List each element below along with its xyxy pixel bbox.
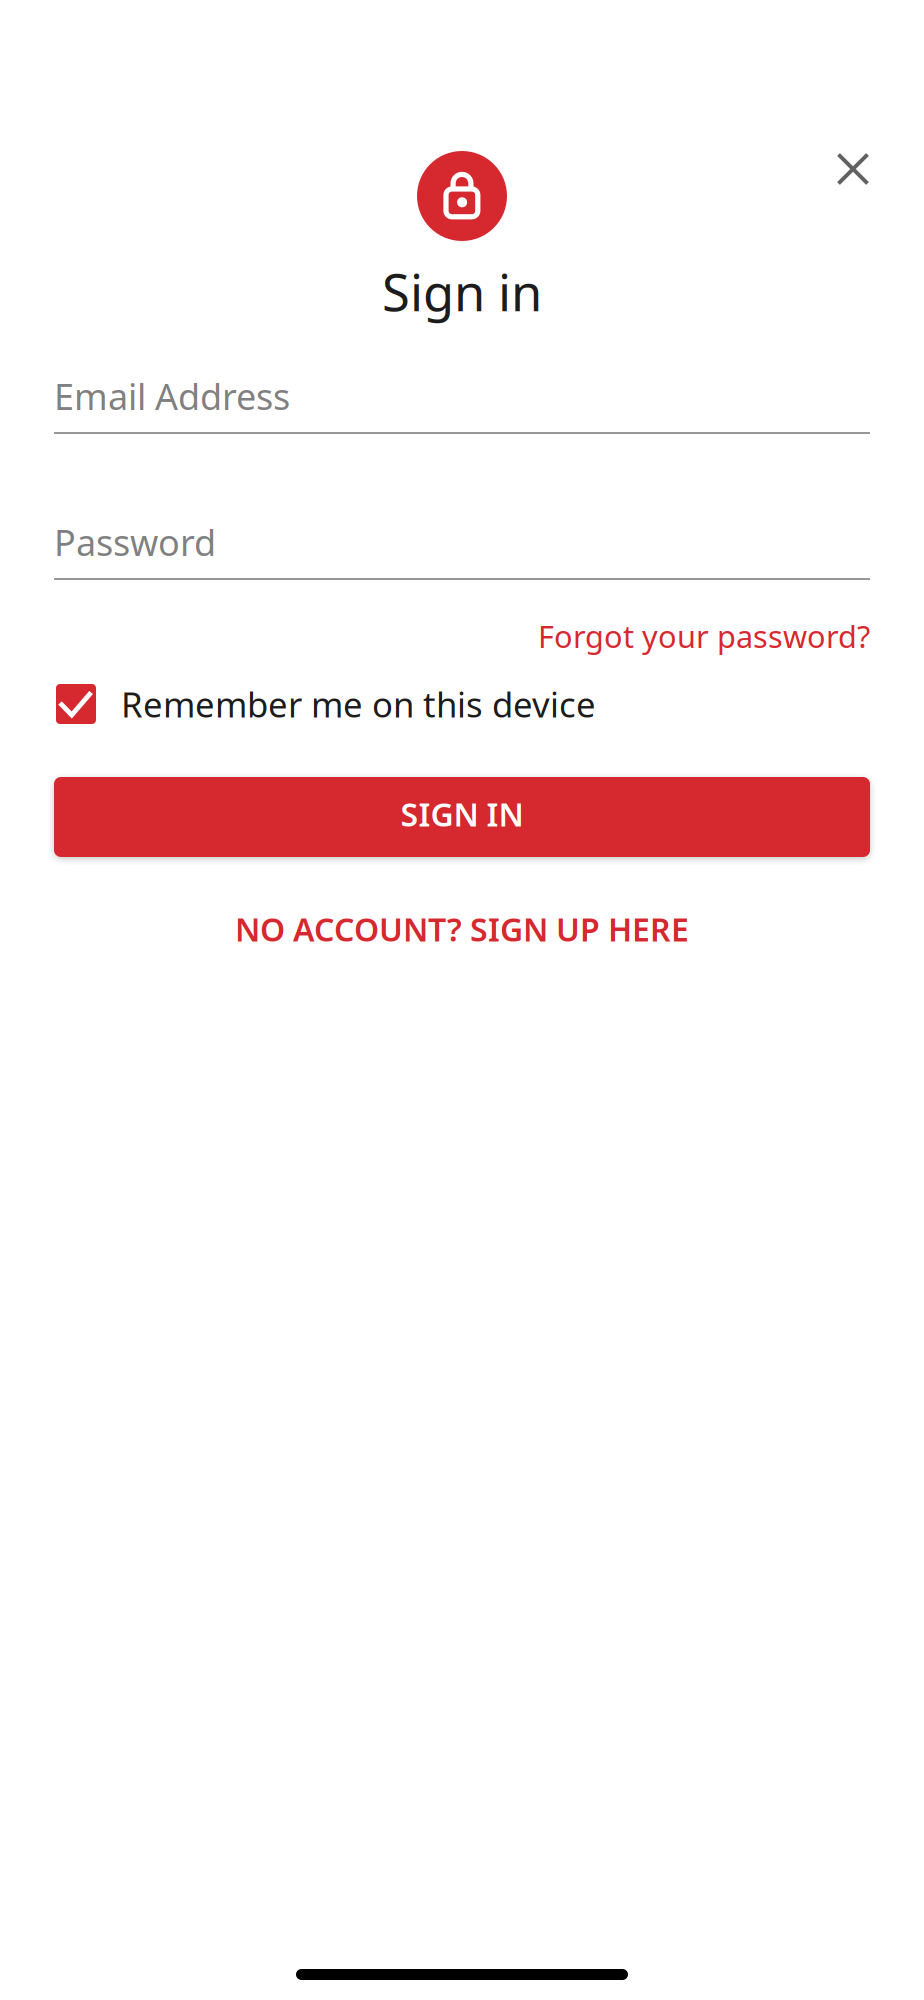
staticText: Sign in: [382, 258, 542, 325]
button[interactable]: SIGN IN: [54, 777, 870, 857]
button[interactable]: Remember me on this device: [54, 682, 870, 726]
staticText: Remember me on this device: [121, 681, 596, 727]
button[interactable]: Close: [825, 141, 881, 197]
staticText: SIGN IN: [400, 793, 523, 835]
button[interactable]: NO ACCOUNT? SIGN UP HERE: [54, 904, 870, 954]
staticText: Email Address: [54, 372, 290, 420]
staticText: NO ACCOUNT? SIGN UP HERE: [235, 908, 689, 950]
staticText: Password: [54, 518, 216, 566]
button[interactable]: Forgot your password?: [54, 619, 870, 653]
staticText: Forgot your password?: [538, 616, 870, 656]
